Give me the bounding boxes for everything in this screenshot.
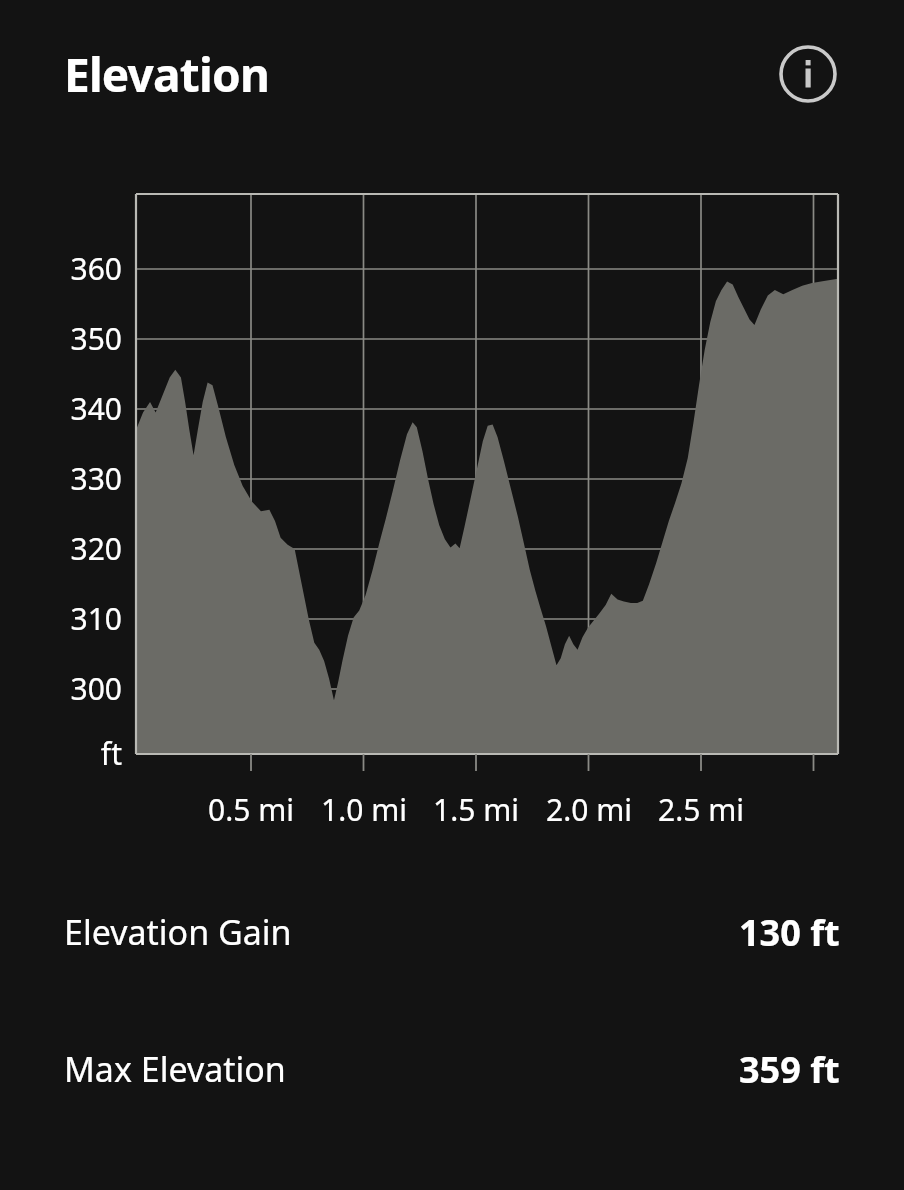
staticText: 300 — [22, 668, 122, 709]
staticText: 320 — [22, 528, 122, 569]
staticText: 1.0 mi — [294, 789, 434, 830]
staticText: Elevation Gain — [64, 909, 292, 955]
button[interactable]: Info — [776, 42, 840, 106]
button[interactable]: Max Elevation — [0, 999, 904, 1139]
staticText: 360 — [22, 248, 122, 289]
staticText: 2.5 mi — [631, 789, 771, 830]
staticText: 330 — [22, 458, 122, 499]
staticText: 340 — [22, 388, 122, 429]
staticText: 130 ft — [739, 908, 840, 957]
staticText: 359 ft — [739, 1045, 840, 1094]
staticText: 2.0 mi — [519, 789, 659, 830]
staticText: 0.5 mi — [181, 789, 321, 830]
staticText: 350 — [22, 318, 122, 359]
staticText: Elevation — [64, 43, 269, 106]
staticText: 1.5 mi — [406, 789, 546, 830]
staticText: 310 — [22, 598, 122, 639]
staticText: Max Elevation — [64, 1046, 286, 1092]
staticText: ft — [22, 733, 122, 774]
button[interactable]: Elevation Gain — [0, 865, 904, 999]
